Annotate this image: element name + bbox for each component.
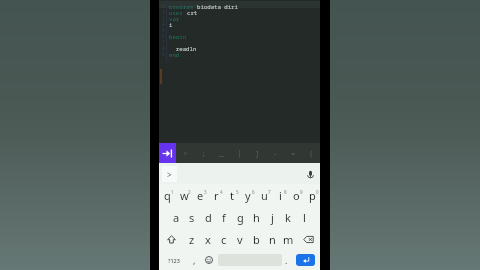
staticText: t xyxy=(230,188,234,203)
staticText: crt xyxy=(187,9,198,15)
button[interactable]: k xyxy=(280,206,296,228)
staticText: > xyxy=(183,148,188,158)
button[interactable]: Tab xyxy=(159,143,176,163)
staticText: w xyxy=(180,188,189,203)
staticText: uses xyxy=(169,9,187,15)
staticText: 9 xyxy=(162,51,165,57)
button[interactable]: d xyxy=(200,206,216,228)
staticText: = xyxy=(291,148,296,158)
staticText: 6 xyxy=(162,33,165,39)
staticText: p xyxy=(309,188,316,203)
button[interactable]: = xyxy=(284,143,302,163)
staticText: j xyxy=(271,210,274,225)
staticText: ] xyxy=(255,148,260,158)
button[interactable]: p xyxy=(304,184,320,206)
staticText: ( xyxy=(309,148,314,158)
button[interactable]: j xyxy=(264,206,280,228)
staticText: b xyxy=(253,232,260,247)
staticText: k xyxy=(285,210,291,225)
button[interactable]: e xyxy=(192,184,208,206)
staticText: 7 xyxy=(268,189,271,195)
staticText: l xyxy=(303,210,306,225)
staticText: end xyxy=(169,51,180,57)
staticText: 3 xyxy=(204,189,207,195)
button[interactable]: w xyxy=(176,184,192,206)
button[interactable]: s xyxy=(184,206,200,228)
button[interactable]: l xyxy=(296,206,312,228)
button[interactable]: Voice input xyxy=(304,168,316,180)
staticText: 1 xyxy=(171,189,174,195)
staticText: 8 xyxy=(284,189,287,195)
staticText: i xyxy=(169,21,173,27)
staticText: 1 xyxy=(162,3,165,9)
button[interactable]: b xyxy=(248,228,264,250)
staticText: a xyxy=(173,210,180,225)
button[interactable]: , xyxy=(188,250,200,270)
staticText: g xyxy=(237,210,244,225)
staticText: , xyxy=(193,254,196,266)
button[interactable]: u xyxy=(256,184,272,206)
button[interactable]: g xyxy=(232,206,248,228)
button[interactable]: ?123 xyxy=(159,250,188,270)
button[interactable]: More suggestions xyxy=(162,166,177,182)
staticText: ; xyxy=(201,148,206,158)
staticText: n xyxy=(269,232,276,247)
staticText: - xyxy=(273,148,278,158)
staticText: v xyxy=(237,232,243,247)
button[interactable]: y xyxy=(240,184,256,206)
staticText: _ xyxy=(219,148,224,158)
staticText: 2 xyxy=(162,9,165,15)
button[interactable]: r xyxy=(208,184,224,206)
staticText: r xyxy=(214,188,219,203)
button[interactable]: m xyxy=(280,228,296,250)
staticText: m xyxy=(283,232,294,247)
staticText: begin xyxy=(169,33,187,39)
staticText: q xyxy=(164,188,171,203)
button[interactable]: v xyxy=(232,228,248,250)
staticText: 2 xyxy=(188,189,191,195)
button[interactable]: Shift xyxy=(159,228,184,250)
staticText: u xyxy=(261,188,268,203)
staticText: h xyxy=(253,210,260,225)
staticText: z xyxy=(189,232,195,247)
staticText: 7 xyxy=(162,39,165,45)
button[interactable]: Enter xyxy=(296,254,315,266)
button[interactable]: o xyxy=(288,184,304,206)
staticText: c xyxy=(221,232,227,247)
button[interactable]: a xyxy=(168,206,184,228)
button[interactable]: i xyxy=(272,184,288,206)
staticText: var xyxy=(169,15,180,21)
staticText: 4 xyxy=(220,189,223,195)
button[interactable]: ] xyxy=(248,143,266,163)
button[interactable]: ( xyxy=(302,143,320,163)
staticText: d xyxy=(205,210,212,225)
button[interactable]: q xyxy=(159,184,176,206)
staticText: 8 xyxy=(162,45,165,51)
button[interactable]: . xyxy=(282,250,291,270)
staticText: 0 xyxy=(316,189,319,195)
staticText: 6 xyxy=(252,189,255,195)
staticText: i xyxy=(279,188,282,203)
staticText: f xyxy=(222,210,226,225)
button[interactable]: t xyxy=(224,184,240,206)
staticText: 5 xyxy=(162,27,165,33)
staticText: 5 xyxy=(236,189,239,195)
button[interactable]: Emoji xyxy=(200,250,218,270)
button[interactable]: h xyxy=(248,206,264,228)
button[interactable]: c xyxy=(216,228,232,250)
staticText: ?123 xyxy=(168,257,180,264)
staticText: program xyxy=(169,3,197,9)
button[interactable]: | xyxy=(230,143,248,163)
button[interactable]: x xyxy=(200,228,216,250)
staticText: 9 xyxy=(300,189,303,195)
button[interactable]: n xyxy=(264,228,280,250)
button[interactable]: Backspace xyxy=(296,228,320,250)
button[interactable]: f xyxy=(216,206,232,228)
staticText: e xyxy=(197,188,204,203)
button[interactable]: z xyxy=(184,228,200,250)
